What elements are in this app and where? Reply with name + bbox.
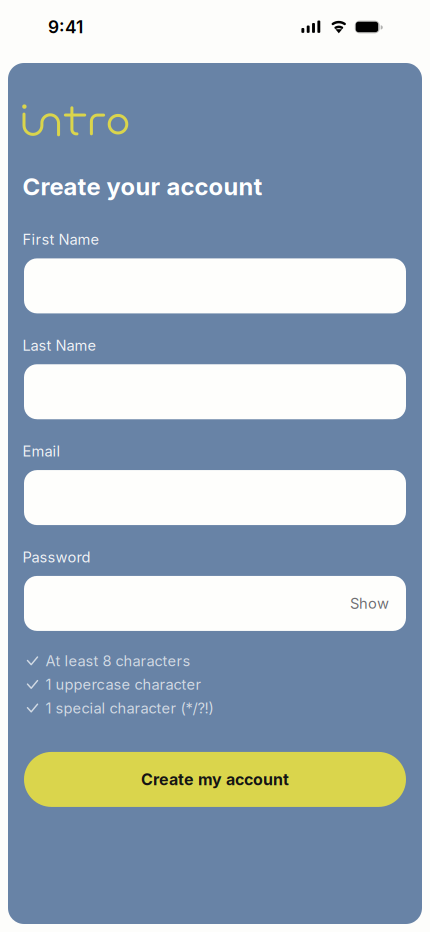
- staticText: Show: [350, 595, 389, 612]
- staticText: At least 8 characters: [46, 652, 191, 670]
- button[interactable]: [24, 364, 406, 419]
- staticText: 1 special character (*/?!): [46, 699, 214, 717]
- button[interactable]: Create my account: [24, 752, 406, 807]
- staticText: Create your account: [22, 172, 262, 201]
- button[interactable]: [24, 258, 406, 313]
- staticText: First Name: [22, 231, 99, 248]
- staticText: 1 uppercase character: [46, 676, 202, 693]
- button[interactable]: Show: [24, 576, 406, 631]
- staticText: Password: [22, 548, 90, 566]
- staticText: Create my account: [141, 770, 289, 789]
- button[interactable]: [24, 470, 406, 525]
- staticText: Last Name: [22, 336, 96, 354]
- staticText: 9:41: [48, 16, 83, 37]
- staticText: Email: [22, 442, 60, 460]
